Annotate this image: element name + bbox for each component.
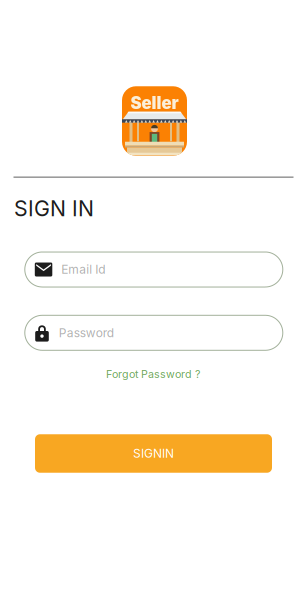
staticText: Seller (130, 93, 178, 113)
button[interactable]: Forgot Password ? (106, 367, 200, 380)
button[interactable]: Email Id (25, 252, 283, 287)
staticText: Email Id (61, 262, 105, 277)
staticText: Password (59, 325, 114, 340)
staticText: Forgot Password ? (106, 367, 200, 380)
button[interactable]: SIGNIN (35, 434, 272, 473)
button[interactable]: Password (25, 315, 283, 350)
staticText: SIGNIN (133, 446, 174, 461)
staticText: SIGN IN (14, 196, 94, 221)
